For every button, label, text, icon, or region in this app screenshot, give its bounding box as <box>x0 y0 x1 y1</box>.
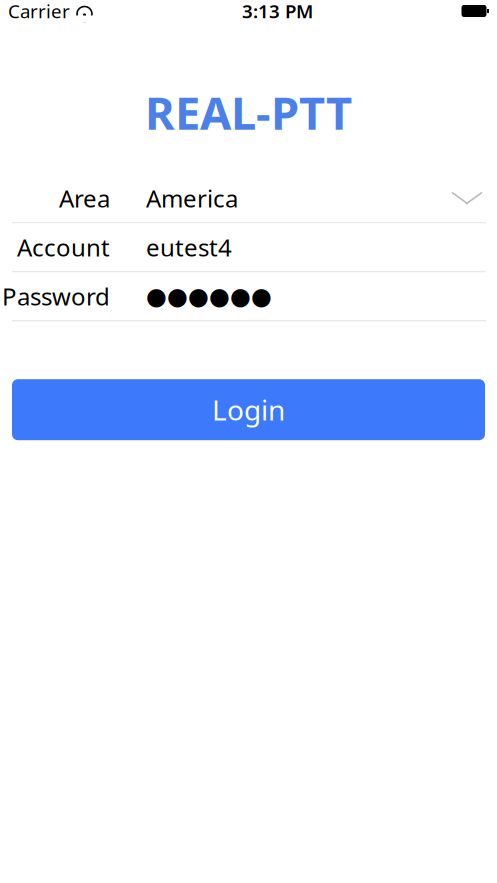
staticText: Login <box>212 391 285 428</box>
staticText: Carrier <box>8 0 70 23</box>
button[interactable]: Area <box>0 174 497 222</box>
button[interactable]: Password <box>0 272 497 320</box>
staticText: America <box>146 182 238 214</box>
staticText: ●●●●●● <box>146 283 272 310</box>
staticText: eutest4 <box>146 231 232 263</box>
staticText: Area <box>59 182 110 214</box>
button[interactable]: Login <box>12 379 485 440</box>
staticText: Account <box>17 231 110 263</box>
staticText: Password <box>2 280 110 312</box>
staticText: 3:13 PM <box>242 0 313 23</box>
button[interactable]: Account <box>0 223 497 271</box>
staticText: REAL-PTT <box>145 82 352 142</box>
